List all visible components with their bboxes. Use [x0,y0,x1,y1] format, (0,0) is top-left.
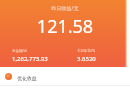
staticText: 昨日收益/元 [0,5,130,12]
staticText: 七日年化/% [77,48,96,53]
staticText: 总金额/元 [12,48,28,53]
staticText: 121.58 [0,14,130,39]
staticText: 优化收益 [17,75,37,81]
staticText: 3.6520 [77,55,96,63]
other: 优化收益 [5,73,12,80]
button[interactable]: 优化收益 [0,67,130,85]
staticText: 1,262,773.93 [12,55,48,63]
